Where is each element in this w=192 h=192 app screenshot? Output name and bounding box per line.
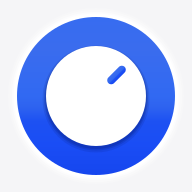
button[interactable]: Timer dial: [6, 6, 186, 186]
